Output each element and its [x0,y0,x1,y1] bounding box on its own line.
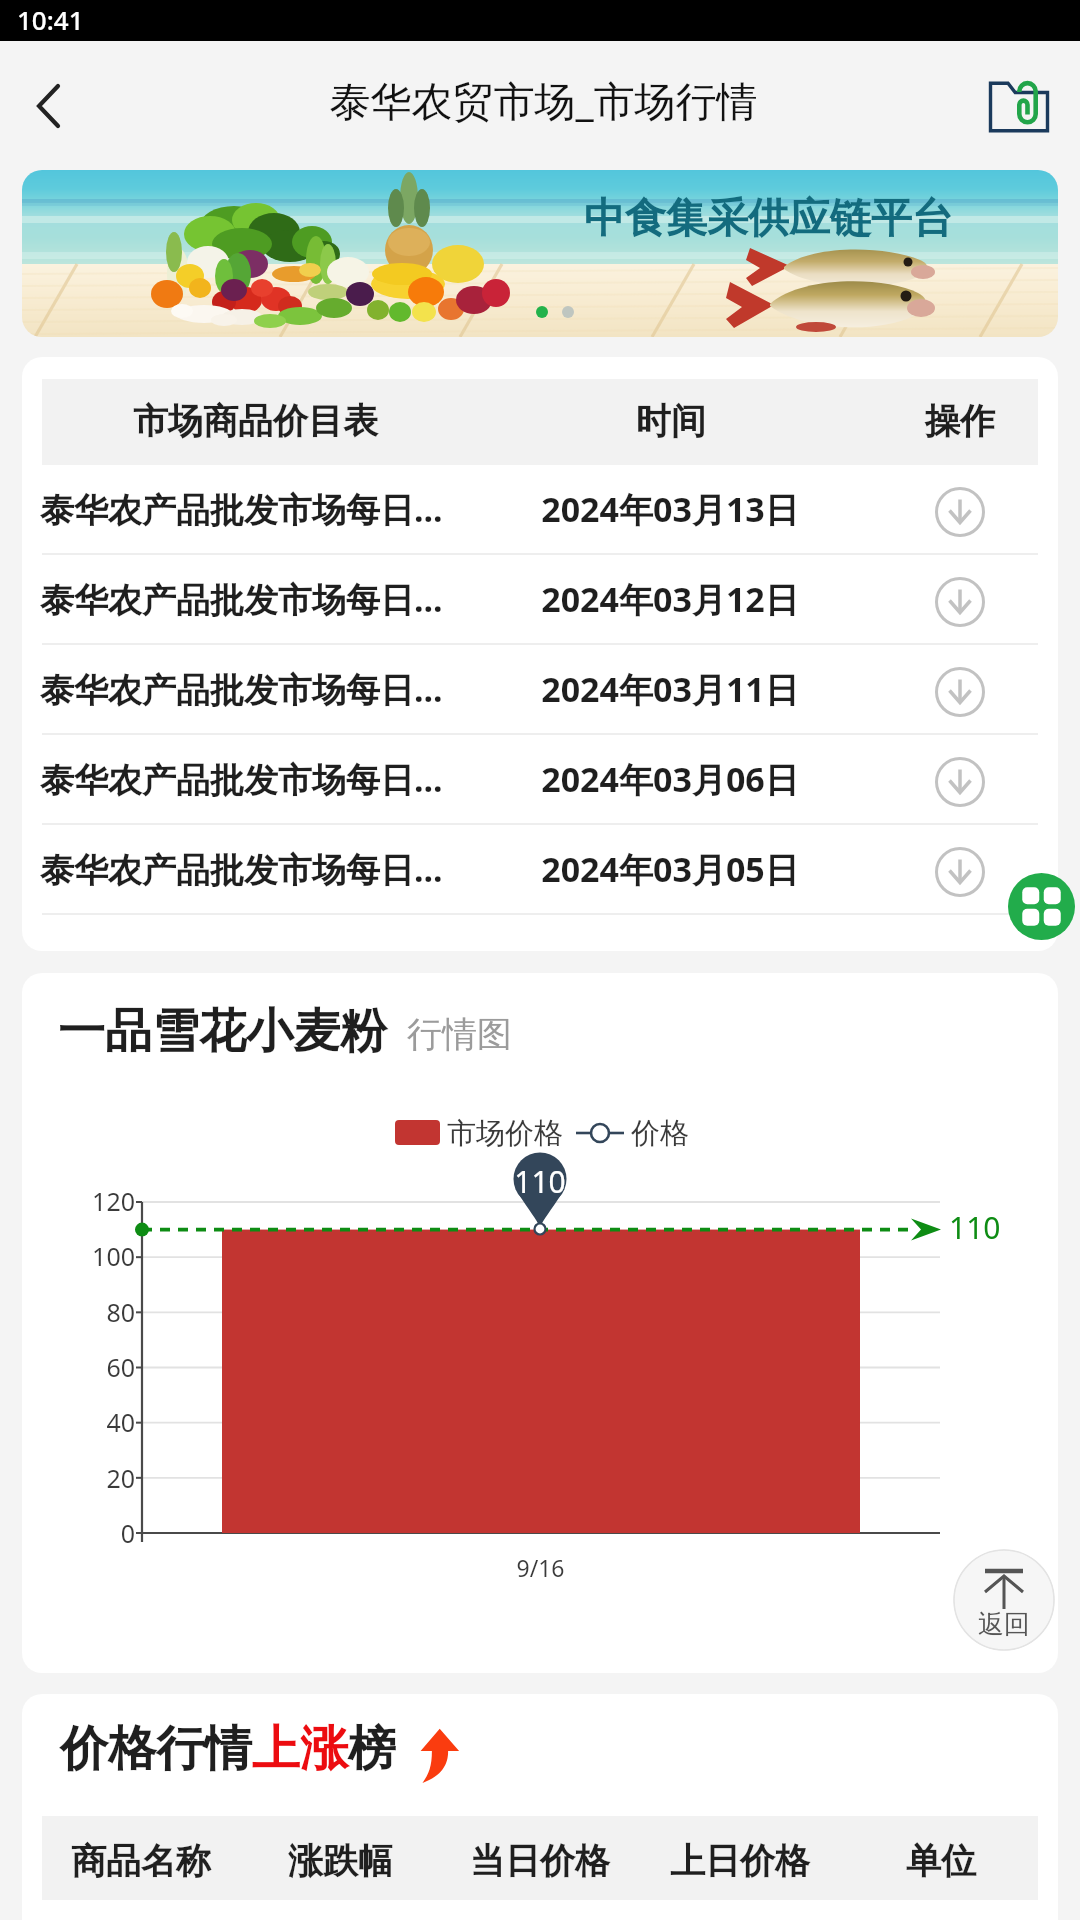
staticText: 当日价格 [470,1839,610,1883]
button[interactable]: 下载 [40,555,1038,645]
button[interactable]: 下载 [936,758,984,806]
staticText: 上涨 [252,1719,348,1779]
staticText: 时间 [636,399,706,443]
staticText: 2024年03月06日 [541,756,799,802]
staticText: 泰华农产品批发市场每日... [40,666,443,712]
button[interactable]: 中食集采供应链平台 [22,170,1058,337]
staticText: 泰华农产品批发市场每日... [40,576,443,622]
staticText: 商品名称 [71,1839,211,1883]
staticText: 60 [106,1350,135,1384]
staticText: 20 [106,1461,135,1495]
staticText: 2024年03月05日 [541,846,799,892]
button[interactable]: 下载 [936,848,984,896]
button[interactable]: 下载 [40,735,1038,825]
staticText: 一品雪花小麦粉 [58,1002,387,1061]
staticText: 返回 [978,1608,1030,1641]
staticText: 9/16 [516,1552,565,1583]
staticText: 价格 [631,1115,689,1152]
staticText: 市场价格 [447,1115,563,1152]
button[interactable]: 下载 [40,465,1038,555]
staticText: 中食集采供应链平台 [584,193,953,245]
staticText: 单位 [906,1839,976,1883]
staticText: 涨跌幅 [288,1839,393,1883]
staticText: 价格行情 [60,1719,252,1779]
staticText: 10:41 [17,2,84,37]
staticText: 泰华农贸市场_市场行情 [329,72,758,128]
button[interactable]: Grid view [1008,873,1075,940]
button[interactable]: Attachments [980,73,1060,143]
staticText: 40 [106,1405,135,1439]
button[interactable]: Back [8,66,88,146]
staticText: 操作 [925,399,995,443]
staticText: 2024年03月11日 [541,666,799,712]
staticText: 80 [106,1295,135,1329]
staticText: 泰华农产品批发市场每日... [40,846,443,892]
staticText: 上日价格 [670,1839,810,1883]
staticText: 100 [92,1239,135,1273]
button[interactable]: 返回 [953,1549,1055,1651]
staticText: 0 [120,1516,135,1550]
staticText: 110 [949,1207,1001,1248]
staticText: 行情图 [407,1012,512,1056]
staticText: 2024年03月12日 [541,576,799,622]
staticText: 2024年03月13日 [541,486,799,532]
staticText: 泰华农产品批发市场每日... [40,756,443,802]
staticText: 泰华农产品批发市场每日... [40,486,443,532]
button[interactable]: 下载 [40,645,1038,735]
staticText: 市场商品价目表 [133,399,378,443]
staticText: 120 [92,1184,135,1218]
staticText: 110 [514,1161,566,1202]
button[interactable]: 下载 [936,488,984,536]
staticText: 榜 [348,1719,396,1779]
button[interactable]: 下载 [936,668,984,716]
button[interactable]: 下载 [936,578,984,626]
button[interactable]: 下载 [40,825,1038,915]
